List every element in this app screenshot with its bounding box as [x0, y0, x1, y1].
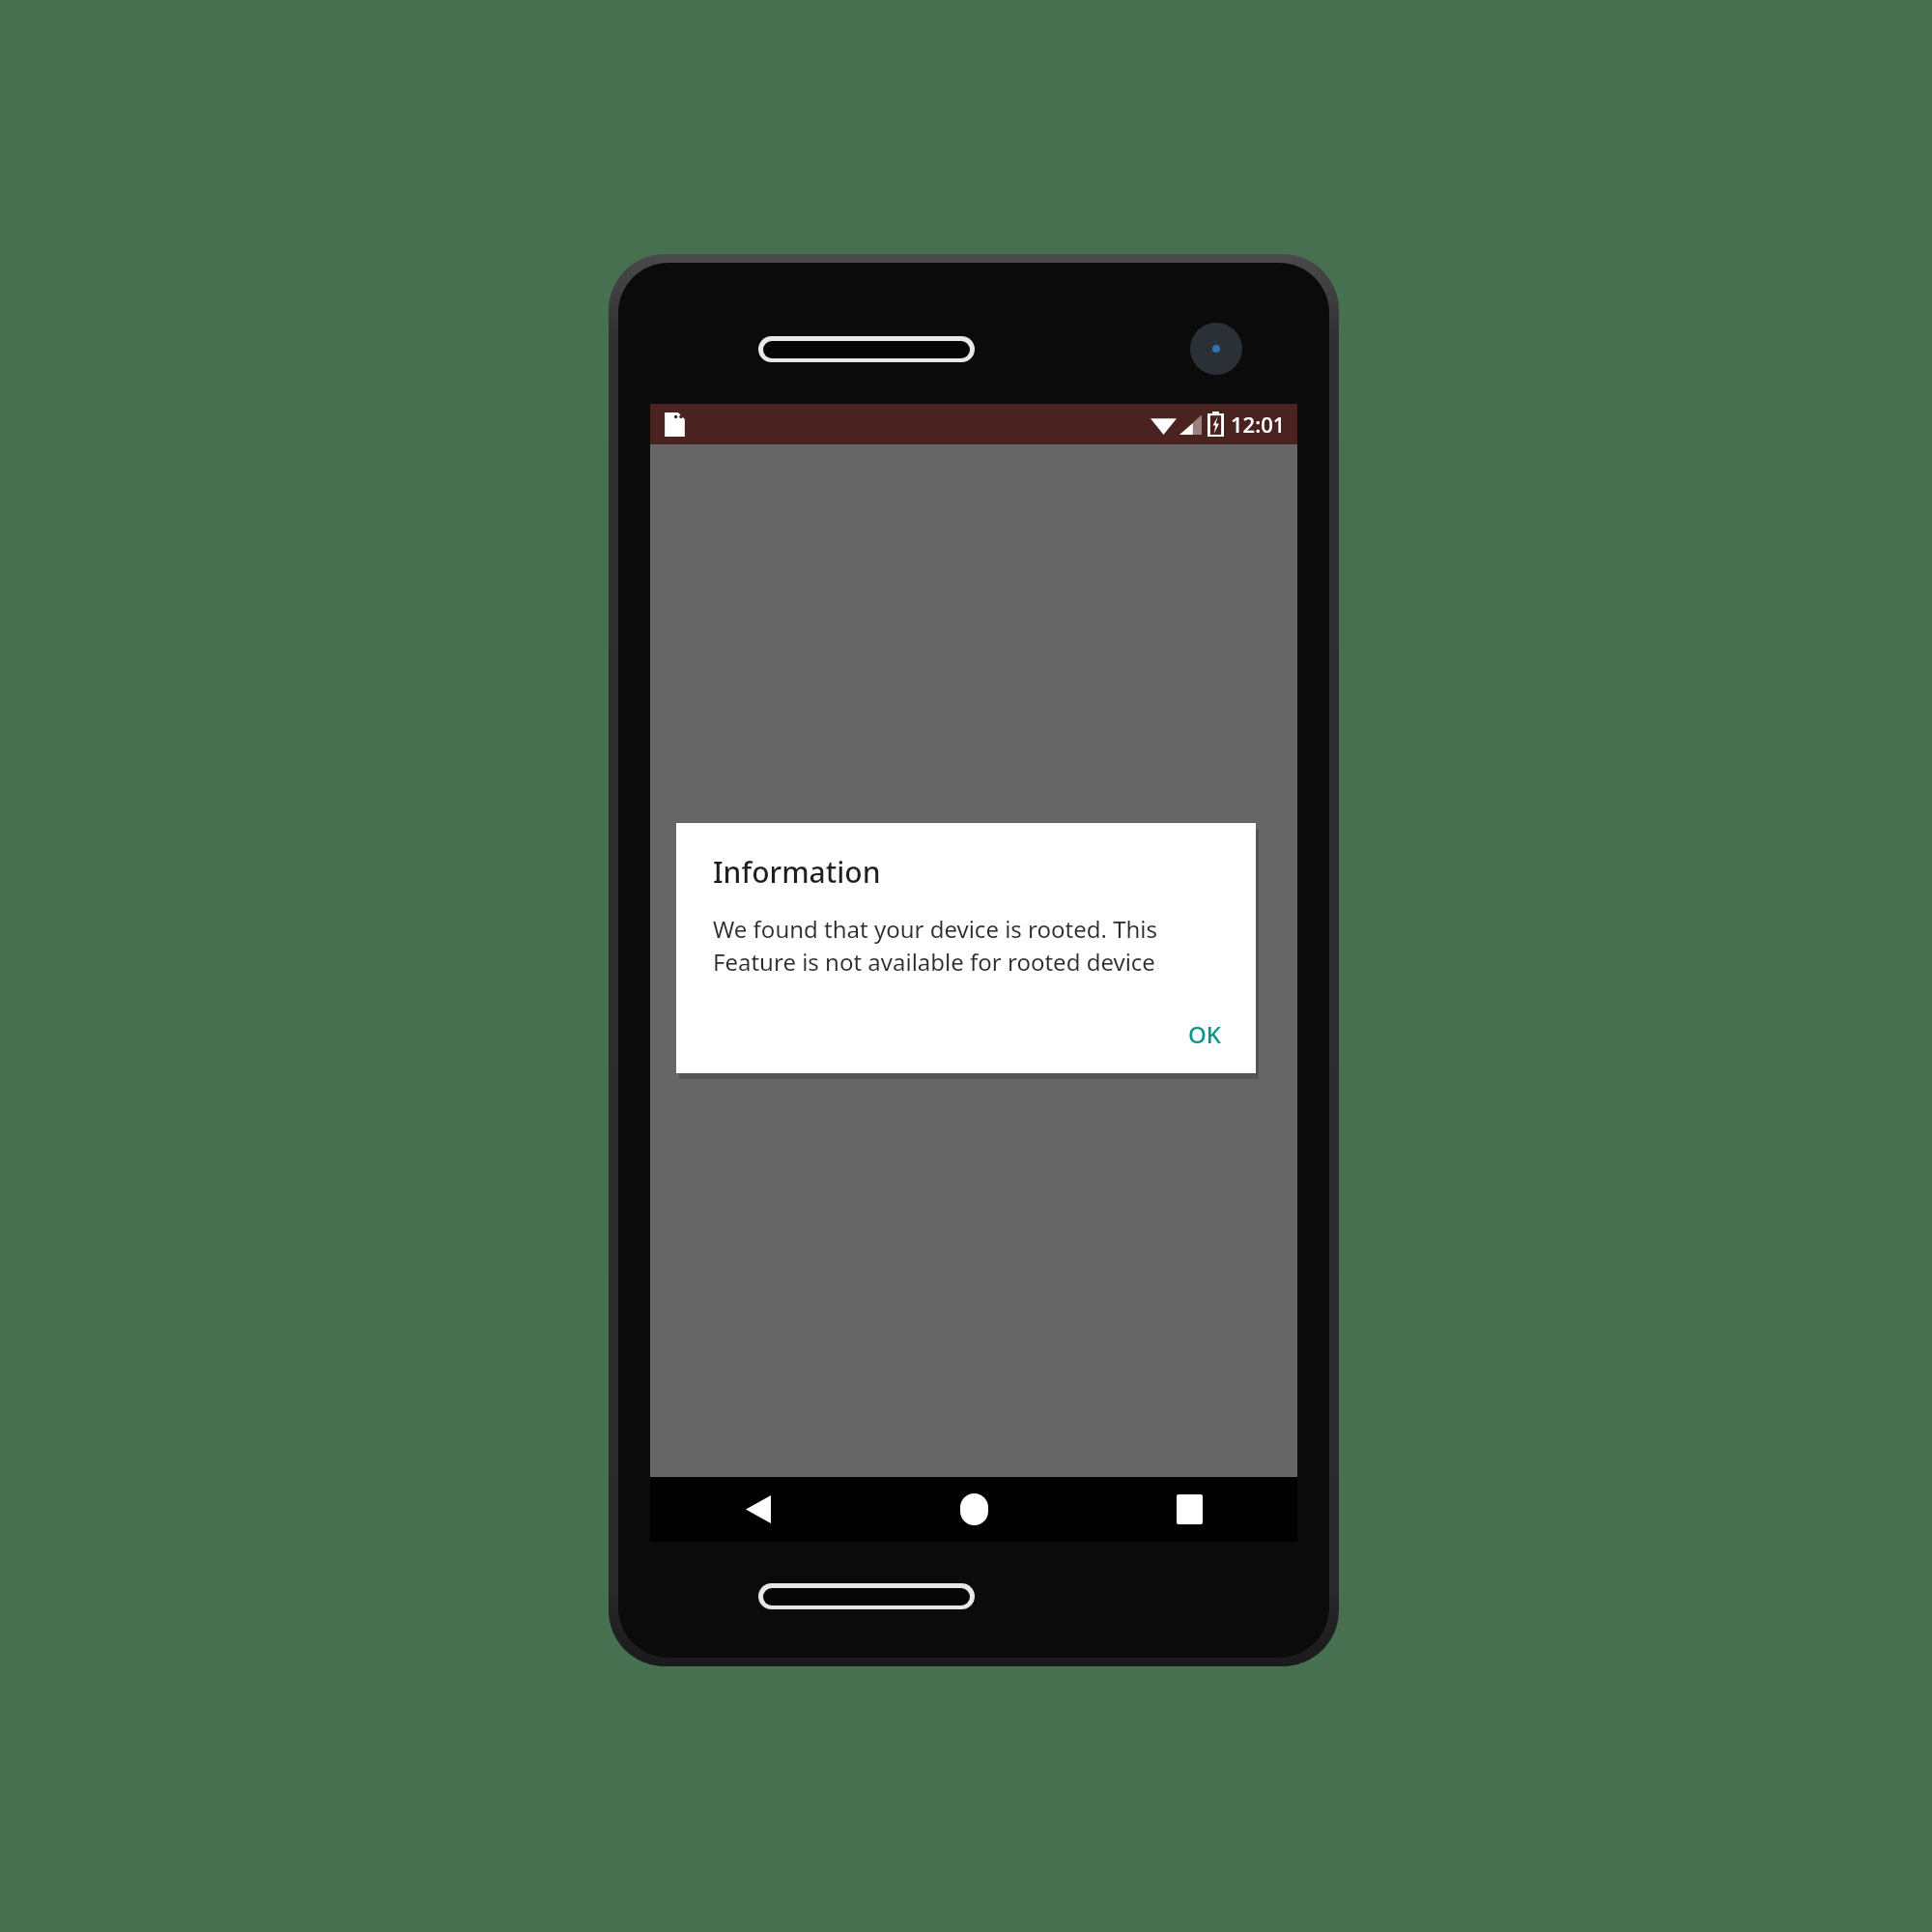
- staticText: 12:01: [1231, 410, 1286, 439]
- button[interactable]: Back: [650, 1477, 867, 1542]
- staticText: We found that your device is rooted. Thi…: [713, 913, 1158, 978]
- button[interactable]: OK: [1171, 1009, 1238, 1060]
- staticText: Information: [713, 852, 881, 892]
- staticText: OK: [1188, 1018, 1221, 1050]
- button[interactable]: Home: [867, 1477, 1082, 1542]
- button[interactable]: Recent apps: [1082, 1477, 1297, 1542]
